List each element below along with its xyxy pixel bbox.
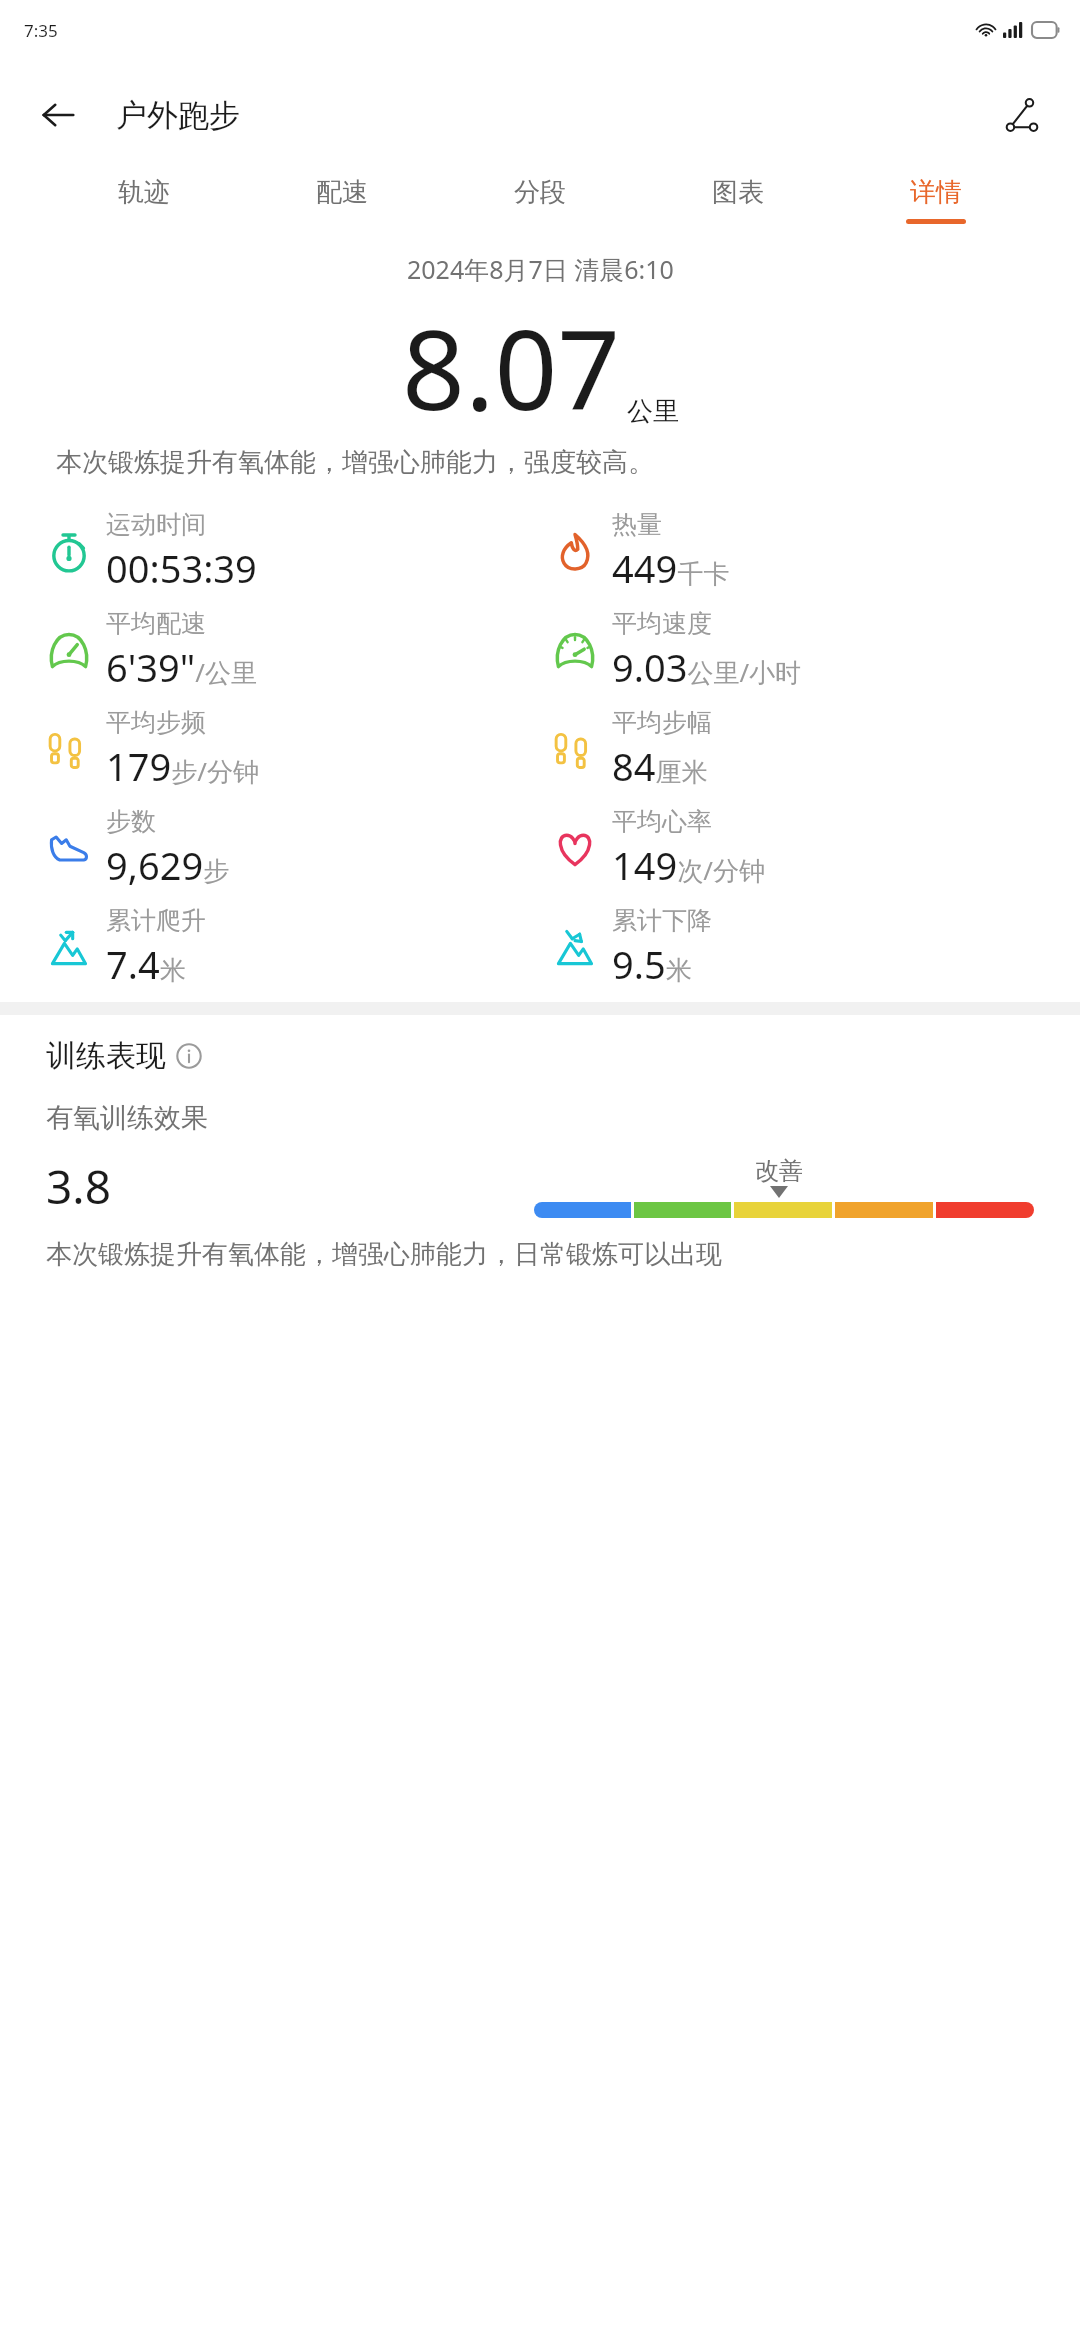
staticText: 9.03公里/小时: [612, 641, 802, 693]
staticText: 149次/分钟: [612, 839, 765, 891]
staticText: 热量: [612, 509, 662, 540]
button[interactable]: Back: [28, 85, 88, 145]
staticText: 6'39"/公里: [106, 641, 257, 693]
staticText: 平均步频: [106, 707, 206, 738]
staticText: 配速: [316, 176, 368, 209]
staticText: 00:53:39: [106, 542, 257, 594]
staticText: 8.07: [402, 292, 621, 442]
button[interactable]: 分段: [506, 170, 574, 230]
button[interactable]: 图表: [704, 170, 772, 230]
staticText: 84厘米: [612, 740, 708, 792]
staticText: 179步/分钟: [106, 740, 259, 792]
staticText: 449千卡: [612, 542, 730, 594]
button[interactable]: 配速: [308, 170, 376, 230]
staticText: 7.4米: [106, 938, 186, 990]
staticText: 步数: [106, 806, 156, 837]
button[interactable]: 步数: [46, 806, 540, 891]
staticText: 图表: [712, 176, 764, 209]
staticText: 本次锻炼提升有氧体能，增强心肺能力，强度较高。: [56, 446, 1024, 479]
button[interactable]: 平均心率: [552, 806, 1080, 891]
button[interactable]: 平均步幅: [552, 707, 1080, 792]
staticText: 改善: [755, 1156, 803, 1186]
button[interactable]: 累计下降: [552, 905, 1080, 990]
button[interactable]: 平均配速: [46, 608, 540, 693]
staticText: 9,629步: [106, 839, 230, 891]
staticText: 平均配速: [106, 608, 206, 639]
staticText: 平均速度: [612, 608, 712, 639]
staticText: 累计爬升: [106, 905, 206, 936]
other: Info: [176, 1043, 202, 1069]
staticText: 训练表现: [46, 1037, 166, 1075]
staticText: 户外跑步: [116, 96, 240, 135]
staticText: 分段: [514, 176, 566, 209]
staticText: 详情: [910, 176, 962, 209]
staticText: 累计下降: [612, 905, 712, 936]
staticText: 本次锻炼提升有氧体能，增强心肺能力，日常锻炼可以出现: [46, 1238, 722, 1271]
staticText: 3.8: [46, 1155, 111, 1218]
button[interactable]: 平均速度: [552, 608, 1080, 693]
staticText: 公里: [627, 395, 679, 428]
button[interactable]: 运动时间: [46, 509, 540, 594]
staticText: 平均步幅: [612, 707, 712, 738]
staticText: 平均心率: [612, 806, 712, 837]
staticText: 有氧训练效果: [46, 1101, 208, 1135]
button[interactable]: Share: [992, 85, 1052, 145]
staticText: 9.5米: [612, 938, 692, 990]
button[interactable]: 轨迹: [110, 170, 178, 230]
button[interactable]: 累计爬升: [46, 905, 540, 990]
button[interactable]: 热量: [552, 509, 1080, 594]
staticText: 7:35: [24, 19, 58, 42]
button[interactable]: 训练表现: [46, 1037, 202, 1075]
staticText: 轨迹: [118, 176, 170, 209]
button[interactable]: 详情: [902, 170, 970, 230]
button[interactable]: 平均步频: [46, 707, 540, 792]
staticText: 2024年8月7日 清晨6:10: [407, 252, 674, 286]
staticText: 运动时间: [106, 509, 206, 540]
